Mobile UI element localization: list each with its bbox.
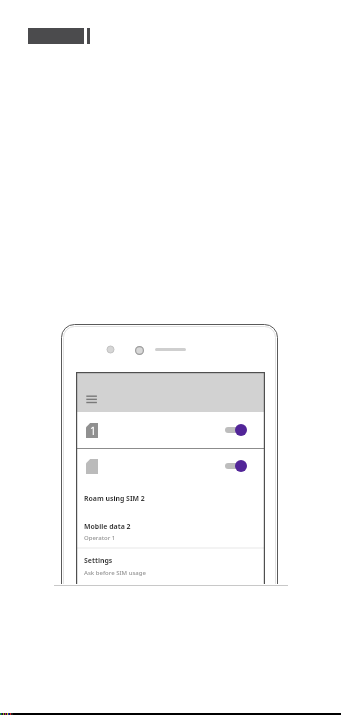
button[interactable]: Open navigation drawer xyxy=(84,393,99,406)
staticText: Ask before SIM usage xyxy=(84,569,146,577)
staticText: Operator 1 xyxy=(84,534,116,542)
staticText: Settings xyxy=(84,556,113,565)
button[interactable]: SIM 2 enabled xyxy=(76,449,265,483)
button[interactable] xyxy=(76,551,265,582)
button[interactable]: Turn off SIM 2 xyxy=(225,460,247,472)
button[interactable] xyxy=(76,516,265,547)
button[interactable] xyxy=(76,487,265,512)
staticText: Mobile data 2 xyxy=(84,522,131,531)
button[interactable]: SIM 1 enabled xyxy=(76,413,265,448)
button[interactable]: Turn off SIM 1 xyxy=(225,424,247,436)
staticText: Roam using SIM 2 xyxy=(84,494,145,503)
